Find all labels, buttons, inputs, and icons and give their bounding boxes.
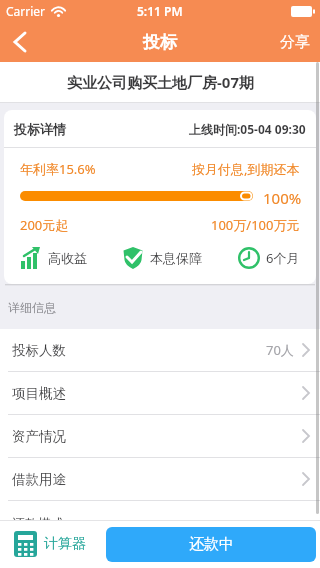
staticText: 年利率15.6% bbox=[20, 160, 96, 178]
staticText: 详细信息 bbox=[8, 300, 56, 315]
staticText: 200元起 bbox=[20, 216, 69, 232]
button[interactable]: 投标人数 bbox=[0, 329, 320, 372]
button[interactable]: 分享 bbox=[270, 25, 320, 60]
staticText: 资产情况 bbox=[12, 428, 66, 445]
staticText: 分享 bbox=[280, 33, 310, 52]
staticText: 100% bbox=[263, 188, 302, 204]
staticText: 借款用途 bbox=[12, 471, 66, 488]
staticText: 100万/100万元 bbox=[211, 216, 300, 232]
button[interactable]: 计算器 bbox=[0, 531, 86, 557]
staticText: 实业公司购买土地厂房-07期 bbox=[67, 72, 254, 92]
staticText: 计算器 bbox=[44, 535, 86, 553]
button[interactable]: 还款中 bbox=[106, 527, 316, 562]
button[interactable]: 借款用途 bbox=[0, 458, 320, 501]
staticText: 高收益 bbox=[48, 250, 87, 266]
button[interactable]: 项目概述 bbox=[0, 372, 320, 415]
staticText: 上线时间:05-04 09:30 bbox=[189, 121, 306, 137]
staticText: 还款中 bbox=[189, 535, 234, 554]
button[interactable]: 资产情况 bbox=[0, 415, 320, 458]
staticText: 按月付息,到期还本 bbox=[192, 160, 300, 178]
staticText: 还款模式 bbox=[12, 515, 64, 520]
staticText: 投标人数 bbox=[12, 342, 66, 359]
staticText: Carrier bbox=[6, 3, 46, 19]
staticText: 本息保障 bbox=[150, 250, 202, 266]
staticText: 6个月 bbox=[266, 249, 300, 267]
staticText: 投标 bbox=[143, 32, 177, 53]
staticText: 投标详情 bbox=[14, 121, 66, 137]
staticText: 项目概述 bbox=[12, 385, 66, 402]
staticText: 70人 bbox=[266, 341, 294, 359]
staticText: 5:11 PM bbox=[137, 3, 183, 19]
button[interactable] bbox=[0, 22, 40, 62]
